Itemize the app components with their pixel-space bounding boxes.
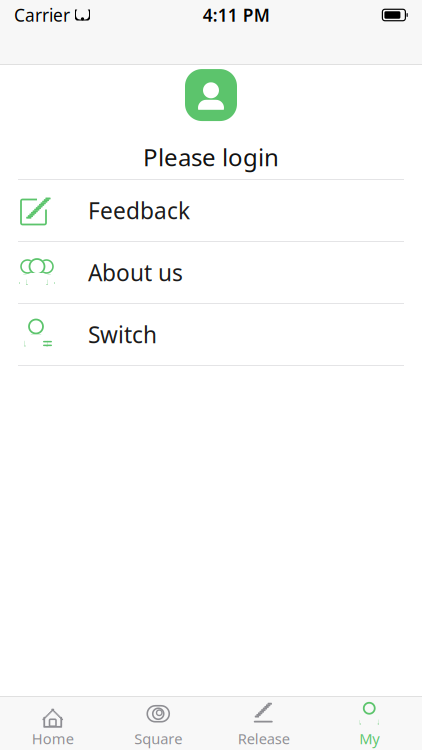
staticText: About us (88, 257, 183, 287)
staticText: Carrier (14, 3, 70, 26)
button[interactable]: About us (0, 242, 422, 304)
staticText: Home (32, 729, 74, 748)
staticText: 4:11 PM (203, 3, 270, 26)
button[interactable]: Please login (119, 135, 303, 179)
staticText: Switch (88, 319, 157, 349)
button[interactable]: Square (105, 695, 211, 750)
staticText: Release (238, 729, 290, 748)
staticText: Square (134, 729, 182, 748)
staticText: Feedback (88, 195, 190, 225)
button[interactable]: Home (0, 695, 105, 750)
staticText: My (359, 729, 379, 748)
button[interactable]: Switch (0, 304, 422, 366)
staticText: Please login (143, 141, 279, 173)
button[interactable]: Release (211, 695, 316, 750)
button[interactable]: My (316, 695, 422, 750)
button[interactable]: Feedback (0, 180, 422, 242)
